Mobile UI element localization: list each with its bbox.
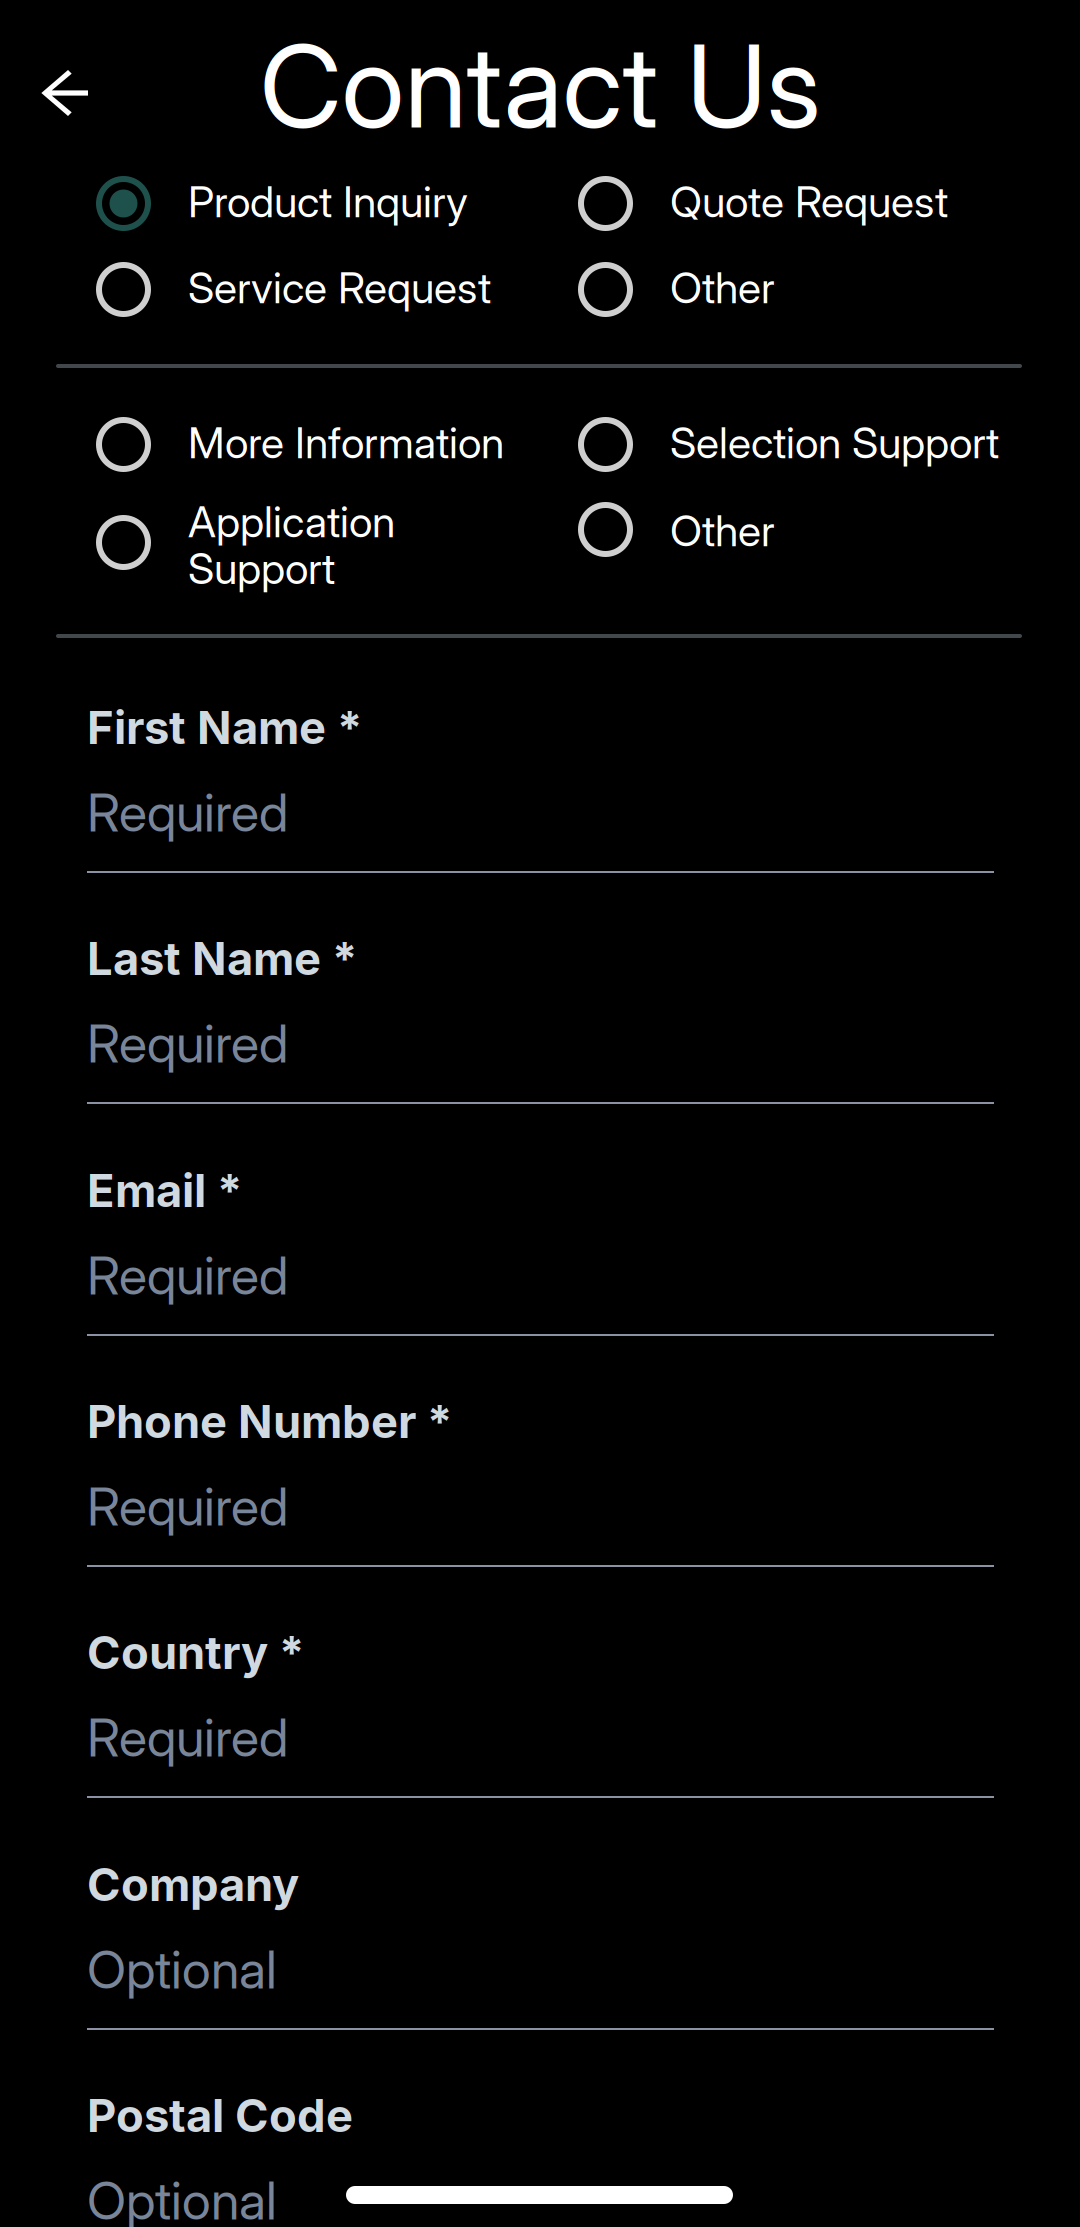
button[interactable]: Other (539, 496, 1022, 624)
staticText: Contact Us (259, 17, 820, 155)
button[interactable]: Quote Request (539, 176, 1022, 262)
staticText: Selection Support (670, 417, 999, 469)
button[interactable]: Service Request (56, 262, 539, 348)
button[interactable]: Postal Code (87, 2051, 994, 2227)
staticText: More Information (188, 417, 504, 469)
button[interactable]: Back (45, 70, 137, 162)
staticText: Product Inquiry (188, 176, 468, 228)
staticText: Other (670, 262, 775, 314)
staticText: Required (87, 781, 288, 844)
button[interactable]: Other (539, 262, 1022, 348)
staticText: Required (87, 1012, 288, 1075)
staticText: First Name * (87, 700, 362, 755)
button[interactable]: Email * (87, 1126, 994, 1357)
staticText: Required (87, 1244, 288, 1307)
button[interactable]: Last Name * (87, 894, 994, 1125)
staticText: Last Name * (87, 931, 357, 986)
button[interactable]: Product Inquiry (56, 176, 539, 262)
staticText: Company (87, 1857, 299, 1912)
button[interactable]: Country * (87, 1588, 994, 1819)
staticText: Application Support (188, 496, 395, 594)
button[interactable]: Company (87, 1820, 994, 2051)
staticText: Required (87, 1706, 288, 1769)
staticText: Service Request (188, 262, 491, 314)
staticText: Email * (87, 1163, 242, 1218)
button[interactable]: Selection Support (539, 417, 1022, 503)
staticText: Quote Request (670, 176, 948, 228)
button[interactable]: First Name * (87, 663, 994, 894)
staticText: Required (87, 1475, 288, 1538)
button[interactable]: Phone Number * (87, 1357, 994, 1588)
button[interactable]: Application Support (56, 496, 539, 624)
staticText: Other (670, 505, 775, 557)
staticText: Country * (87, 1625, 304, 1680)
staticText: Optional (87, 1938, 277, 2001)
staticText: Postal Code (87, 2088, 353, 2143)
staticText: Phone Number * (87, 1394, 452, 1449)
button[interactable]: More Information (56, 417, 539, 503)
staticText: Optional (87, 2169, 277, 2227)
